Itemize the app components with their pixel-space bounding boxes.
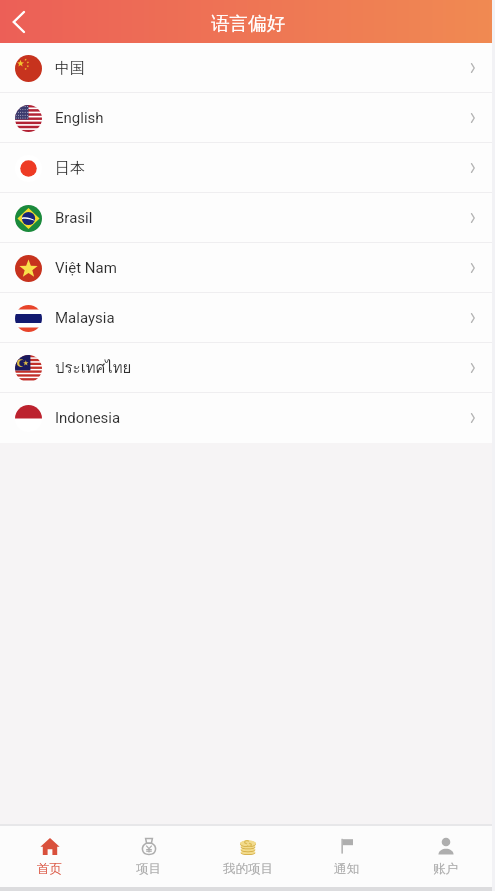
button[interactable]: 项目 [99,826,198,887]
staticText: 项目 [136,861,161,877]
button[interactable]: 首页 [0,826,99,887]
staticText: Brasil [55,209,93,227]
button[interactable]: Brasil [0,193,495,243]
button[interactable]: 日本 [0,143,495,193]
button[interactable]: Malaysia [0,293,495,343]
staticText: 我的项目 [223,861,273,877]
button[interactable]: English [0,93,495,143]
button[interactable]: Indonesia [0,393,495,443]
staticText: Việt Nam [55,259,117,277]
staticText: 通知 [334,861,359,877]
staticText: 账户 [433,861,458,877]
staticText: 中国 [55,59,85,78]
button[interactable]: Back [0,0,40,43]
staticText: ประเทศไทย [55,356,132,380]
button[interactable]: 我的项目 [198,826,297,887]
staticText: Malaysia [55,309,115,327]
button[interactable]: 中国 [0,43,495,93]
staticText: Indonesia [55,409,121,427]
button[interactable]: 通知 [297,826,396,887]
button[interactable]: ประเทศไทย [0,343,495,393]
staticText: English [55,109,104,127]
staticText: 语言偏好 [211,12,285,35]
button[interactable]: 账户 [396,826,495,887]
staticText: 日本 [55,159,85,178]
button[interactable]: Việt Nam [0,243,495,293]
staticText: 首页 [37,861,62,877]
